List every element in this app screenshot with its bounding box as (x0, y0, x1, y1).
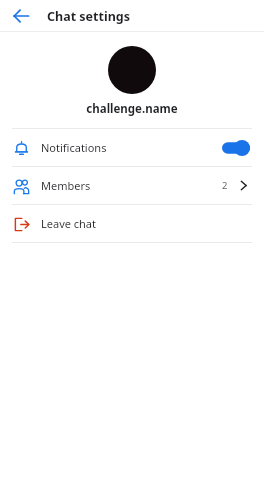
button[interactable]: Leave chat (0, 205, 264, 242)
button[interactable]: Notifications toggle (222, 140, 250, 156)
staticText: Notifications (41, 140, 107, 155)
staticText: challenge.name (0, 101, 264, 117)
button[interactable]: Chat avatar (108, 46, 156, 94)
staticText: Members (41, 178, 91, 193)
staticText: Chat settings (47, 8, 130, 25)
button[interactable]: Members (0, 167, 264, 204)
button[interactable]: Notifications (0, 129, 264, 166)
staticText: Leave chat (41, 216, 97, 231)
staticText: 2 (222, 179, 228, 192)
button[interactable]: Back (8, 3, 34, 29)
